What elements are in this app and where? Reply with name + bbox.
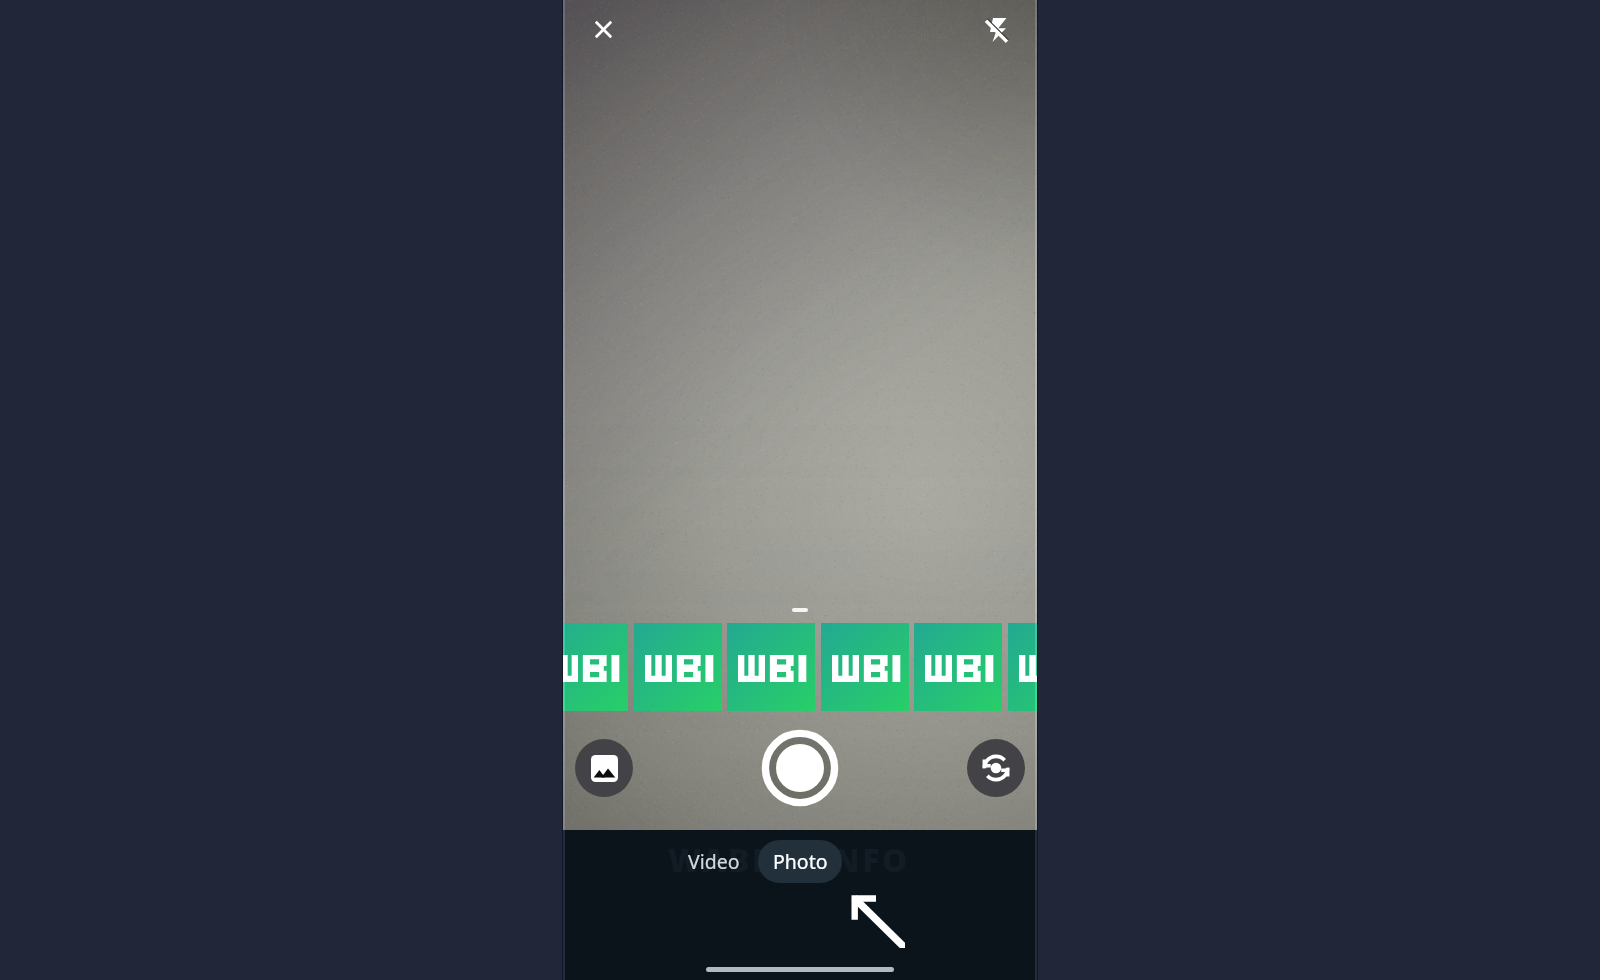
staticText: Video (688, 848, 740, 875)
button[interactable]: Photo (758, 840, 842, 883)
staticText: Photo (773, 848, 828, 875)
button[interactable]: WBI filter (821, 623, 909, 711)
staticText: WABETAINFO (668, 838, 910, 882)
button[interactable]: WBI filter (727, 623, 815, 711)
button[interactable]: WBI filter (1008, 623, 1037, 711)
button[interactable]: Flash off (978, 11, 1015, 48)
button[interactable]: WBI filter (634, 623, 722, 711)
button[interactable]: Switch camera (967, 739, 1025, 797)
button[interactable]: Close camera (585, 11, 622, 48)
button[interactable]: Video (676, 840, 752, 883)
button[interactable]: WBI filter (563, 623, 628, 711)
button[interactable]: Take photo (760, 738, 840, 798)
button[interactable]: Open gallery (575, 739, 633, 797)
button[interactable]: WBI filter (914, 623, 1002, 711)
